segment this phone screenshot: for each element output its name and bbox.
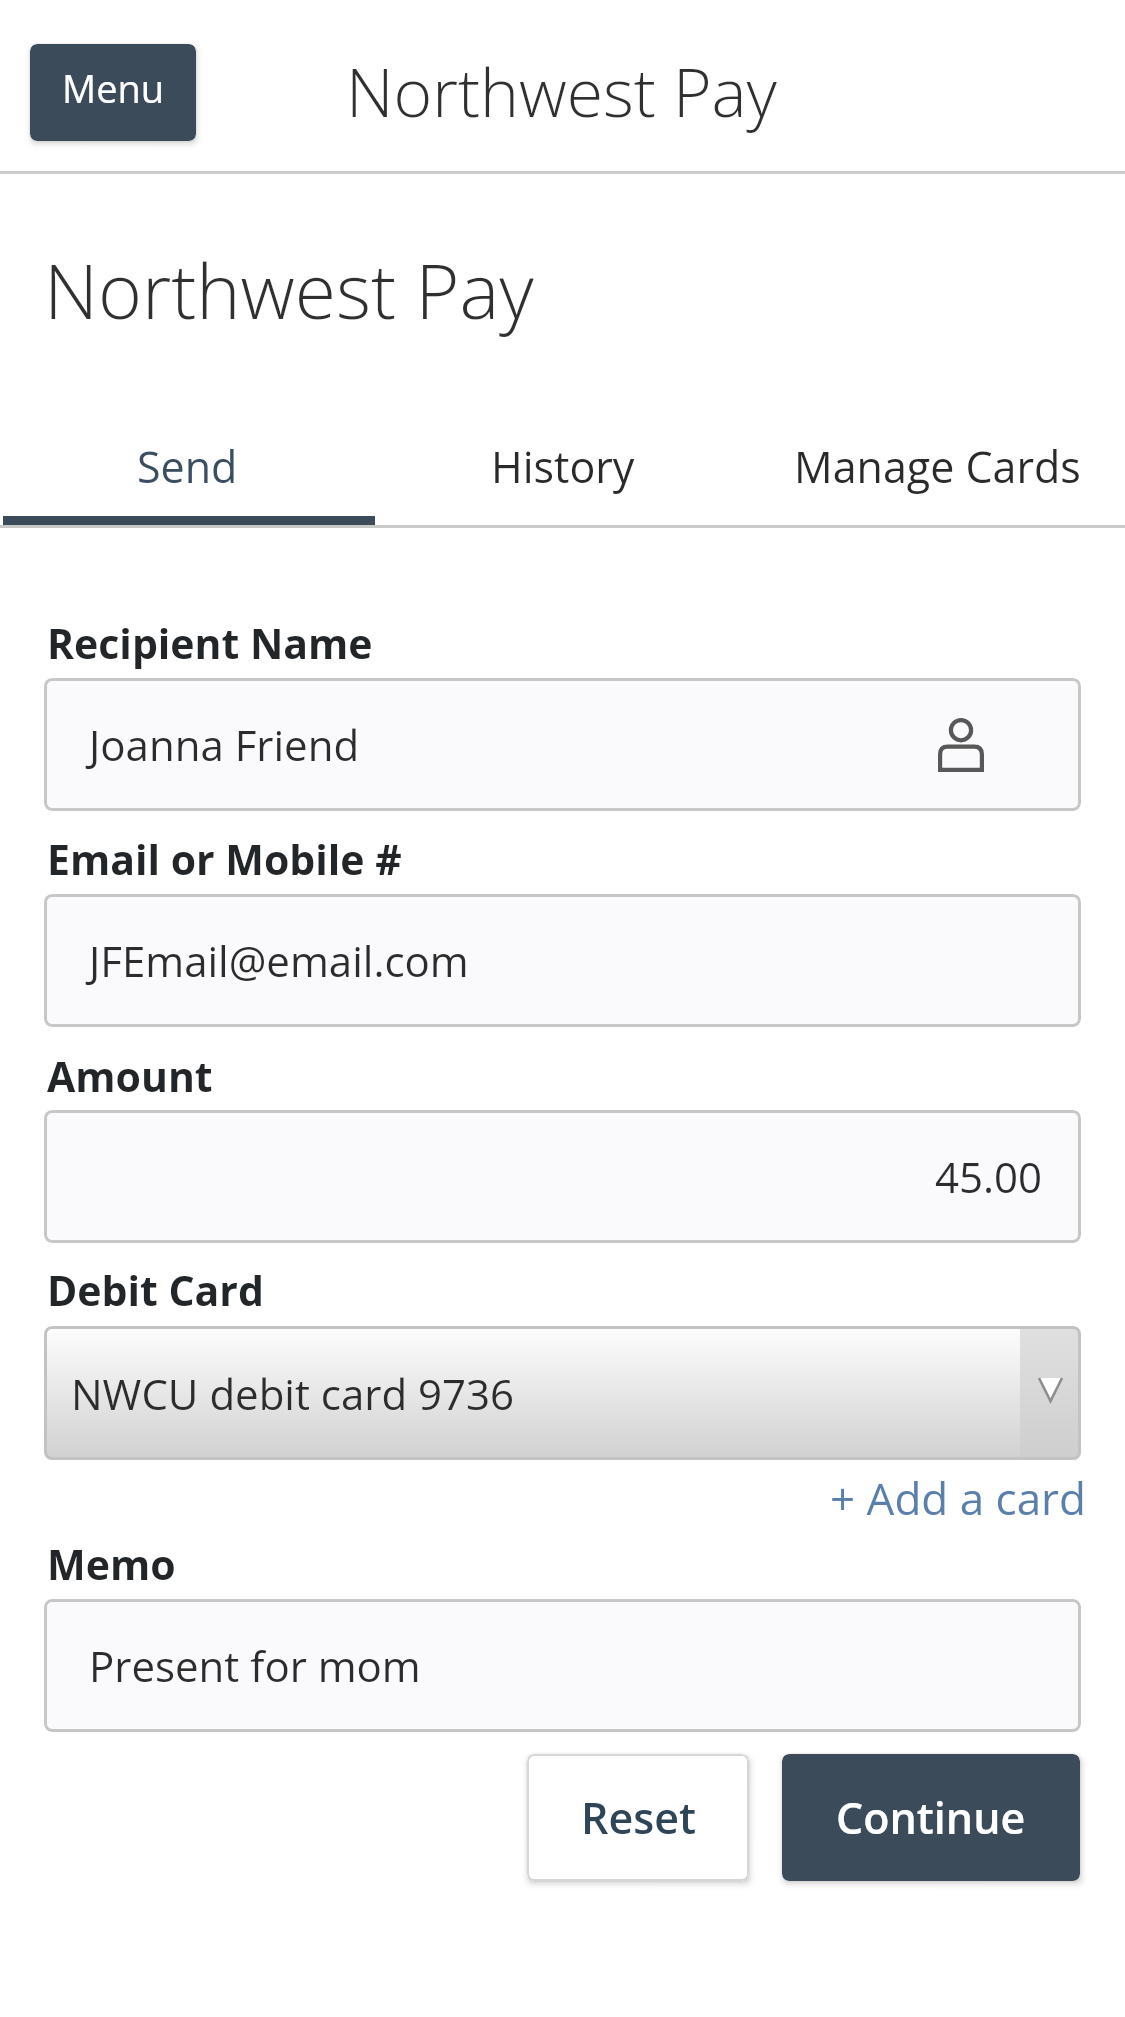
- staticText: Reset: [581, 1788, 696, 1847]
- button[interactable]: Open card list: [1020, 1326, 1081, 1460]
- staticText: Recipient Name: [47, 615, 373, 671]
- button[interactable]: History: [375, 422, 750, 511]
- button[interactable]: + Add a card: [830, 1468, 1086, 1528]
- staticText: Northwest Pay: [346, 46, 777, 136]
- button[interactable]: JFEmail@email.com: [44, 894, 1081, 1027]
- button[interactable]: Present for mom: [44, 1599, 1081, 1732]
- staticText: Joanna Friend: [89, 716, 360, 773]
- staticText: 45.00: [935, 1148, 1043, 1205]
- button[interactable]: Continue: [782, 1754, 1080, 1881]
- button[interactable]: 45.00: [44, 1110, 1081, 1243]
- staticText: Memo: [47, 1536, 176, 1592]
- staticText: Present for mom: [89, 1637, 421, 1694]
- staticText: Debit Card: [47, 1262, 264, 1318]
- staticText: Amount: [47, 1048, 213, 1104]
- staticText: Send: [137, 437, 238, 496]
- staticText: Manage Cards: [794, 437, 1081, 496]
- button[interactable]: Menu: [30, 44, 196, 141]
- staticText: Continue: [836, 1788, 1026, 1847]
- staticText: Email or Mobile #: [47, 831, 402, 887]
- staticText: History: [491, 437, 635, 496]
- staticText: Menu: [62, 62, 165, 114]
- button[interactable]: Joanna Friend: [44, 678, 1081, 811]
- other: Choose contact: [938, 718, 984, 772]
- staticText: Northwest Pay: [44, 239, 534, 341]
- button[interactable]: Send: [0, 422, 375, 511]
- button[interactable]: Reset: [527, 1754, 749, 1881]
- button[interactable]: Manage Cards: [750, 422, 1125, 511]
- button[interactable]: NWCU debit card 9736: [44, 1326, 1081, 1460]
- staticText: JFEmail@email.com: [89, 932, 469, 989]
- staticText: NWCU debit card 9736: [71, 1365, 515, 1422]
- staticText: + Add a card: [830, 1468, 1086, 1528]
